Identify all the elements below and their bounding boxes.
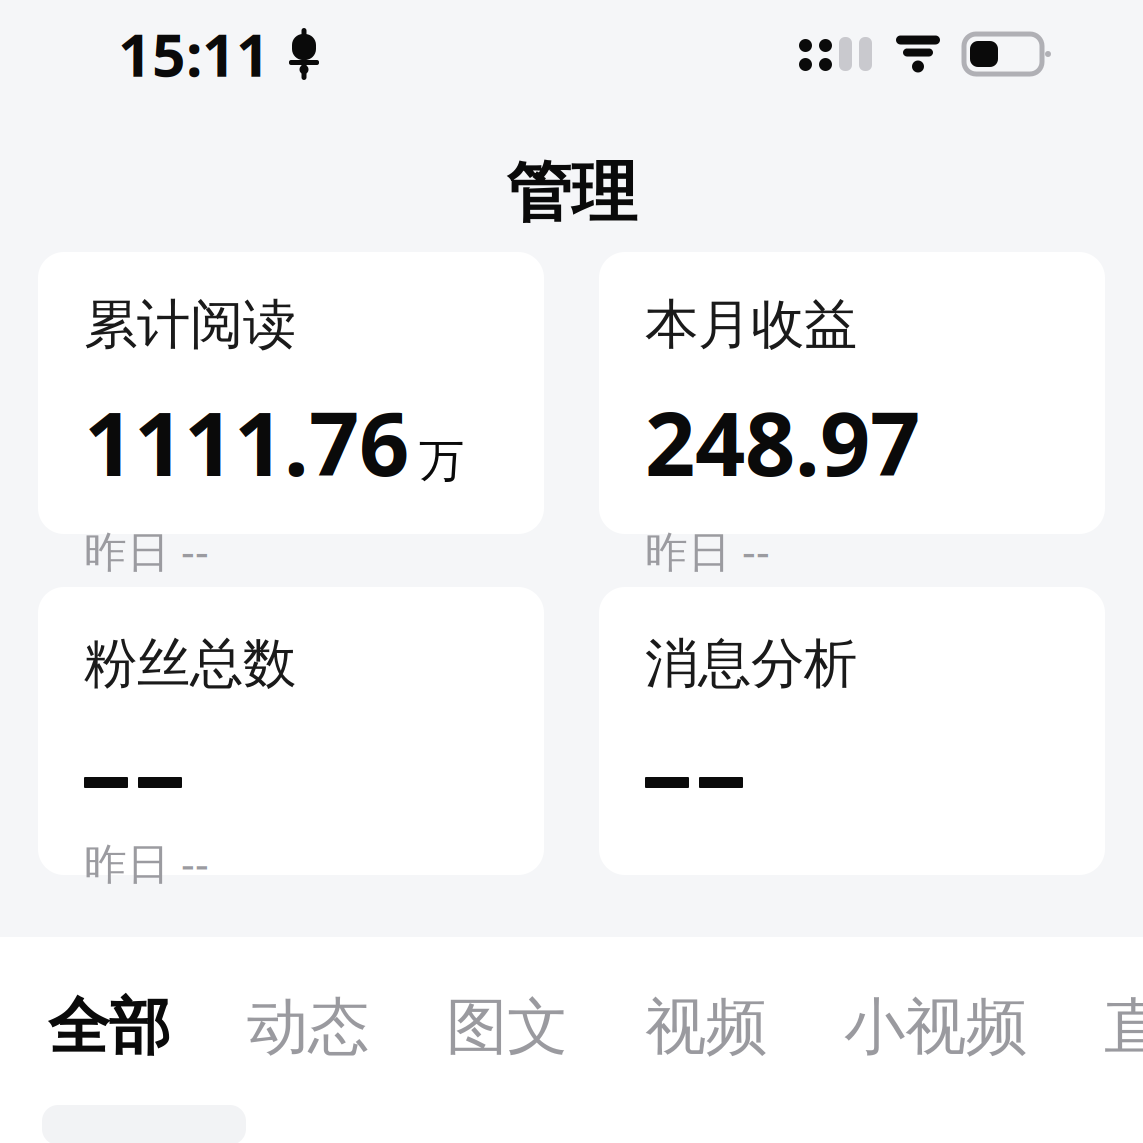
staticText: 1111.76 <box>84 383 409 500</box>
staticText: 直 <box>1104 989 1143 1065</box>
staticText: 管理 <box>506 153 636 233</box>
button[interactable]: 图文 <box>440 983 574 1071</box>
button[interactable]: 消息分析 <box>599 587 1105 875</box>
button[interactable]: 视频 <box>639 983 773 1071</box>
button[interactable]: 直 <box>1098 983 1143 1071</box>
button[interactable]: 动态 <box>241 983 375 1071</box>
button[interactable]: 全部 <box>42 983 176 1071</box>
button[interactable]: 累计阅读 <box>38 252 544 534</box>
staticText: 粉丝总数 <box>84 631 296 696</box>
staticText: 消息分析 <box>645 631 857 696</box>
staticText: 累计阅读 <box>84 292 296 357</box>
staticText: 15:11 <box>118 15 270 93</box>
button[interactable]: 本月收益 <box>599 252 1105 534</box>
staticText: 万 <box>419 433 464 489</box>
staticText: 248.97 <box>645 383 920 500</box>
button[interactable]: 小视频 <box>838 983 1033 1071</box>
staticText: 图文 <box>446 989 568 1065</box>
staticText: 昨日 -- <box>84 834 209 891</box>
staticText: 本月收益 <box>645 292 857 357</box>
staticText: 视频 <box>645 989 767 1065</box>
staticText: 全部 <box>48 989 170 1065</box>
staticText: 动态 <box>247 989 369 1065</box>
staticText: 小视频 <box>844 989 1027 1065</box>
staticText: 昨日 -- <box>645 522 770 579</box>
button[interactable]: 粉丝总数 <box>38 587 544 875</box>
staticText: 昨日 -- <box>84 522 209 579</box>
